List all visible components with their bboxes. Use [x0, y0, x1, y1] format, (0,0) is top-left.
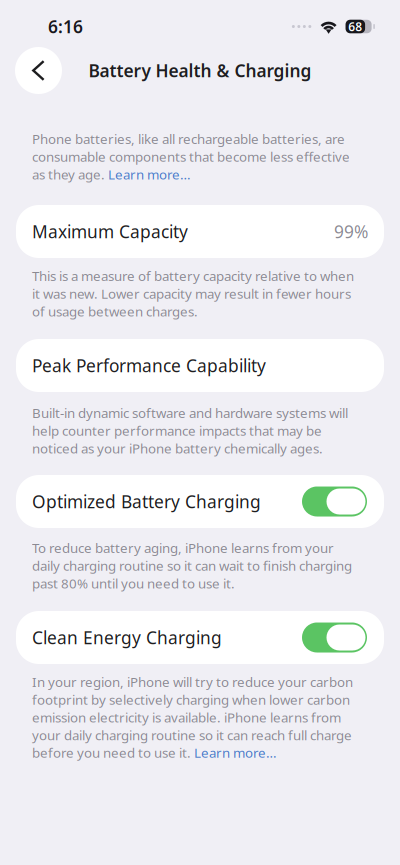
staticText: Optimized Battery Charging: [32, 490, 261, 513]
staticText: To reduce battery aging, iPhone learns f…: [32, 539, 352, 592]
button[interactable]: Back: [15, 47, 62, 94]
staticText: This is a measure of battery capacity re…: [32, 267, 354, 320]
staticText: 68: [348, 18, 362, 34]
button[interactable]: Maximum Capacity: [0, 205, 400, 258]
staticText: Maximum Capacity: [32, 220, 188, 243]
button[interactable]: Clean Energy Charging: [0, 611, 400, 664]
button[interactable]: Optimized Battery Charging: [0, 475, 400, 528]
staticText: Phone batteries, like all rechargeable b…: [32, 130, 350, 183]
staticText: Built-in dynamic software and hardware s…: [32, 404, 348, 457]
button[interactable]: Peak Performance Capability: [0, 339, 400, 392]
staticText: Battery Health & Charging: [88, 59, 311, 82]
staticText: Peak Performance Capability: [32, 354, 266, 377]
staticText: In your region, iPhone will try to reduc…: [32, 673, 353, 761]
staticText: 99%: [334, 220, 368, 243]
staticText: 6:16: [48, 15, 83, 38]
staticText: Clean Energy Charging: [32, 626, 222, 649]
